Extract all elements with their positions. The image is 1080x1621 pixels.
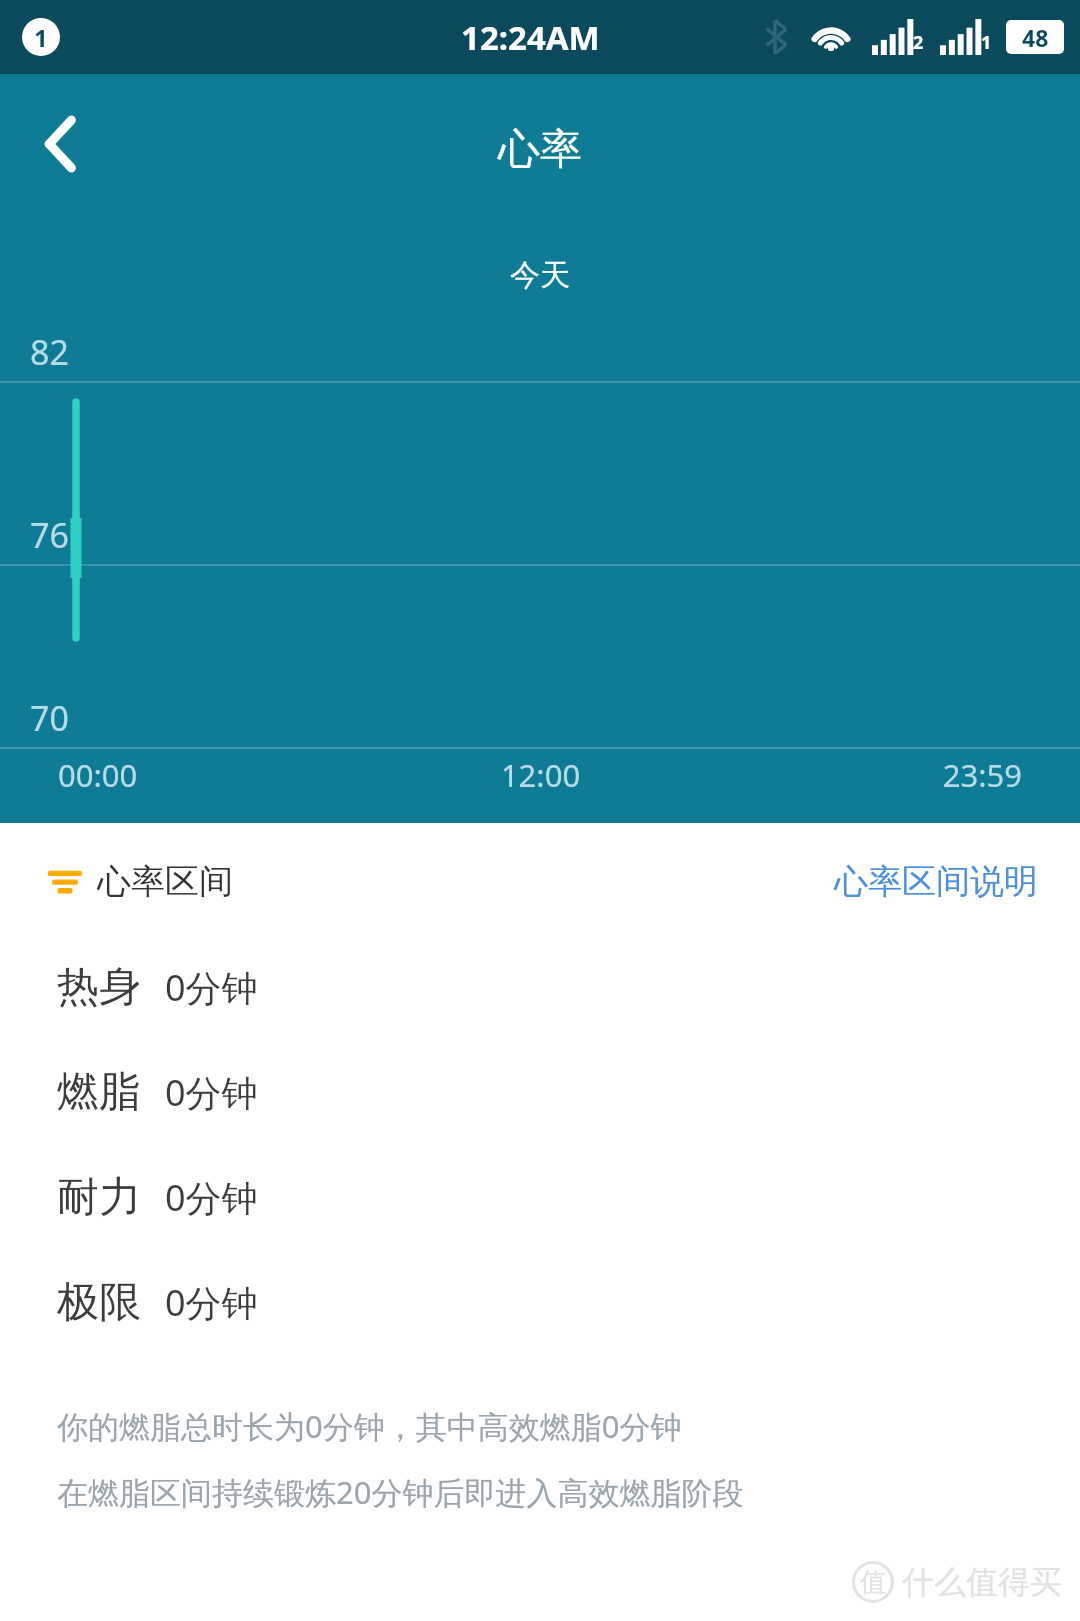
button[interactable]: 燃脂 bbox=[0, 1066, 1080, 1119]
staticText: 0分钟 bbox=[165, 1278, 258, 1327]
staticText: 热身 bbox=[57, 961, 141, 1014]
button[interactable]: 耐力 bbox=[0, 1171, 1080, 1224]
staticText: 1 bbox=[34, 21, 48, 54]
button[interactable]: 极限 bbox=[0, 1276, 1080, 1329]
button[interactable]: 热身 bbox=[0, 961, 1080, 1014]
staticText: 心率 bbox=[498, 123, 582, 176]
staticText: 心率区间说明 bbox=[834, 860, 1038, 903]
staticText: 什么值得买 bbox=[902, 1562, 1062, 1602]
staticText: 0分钟 bbox=[165, 1173, 258, 1222]
staticText: 你的燃脂总时长为0分钟，其中高效燃脂0分钟 bbox=[57, 1405, 682, 1447]
staticText: 00:00 bbox=[58, 754, 380, 796]
button[interactable]: 心率区间说明 bbox=[834, 860, 1038, 903]
staticText: 1 bbox=[981, 30, 992, 55]
staticText: 23:59 bbox=[701, 754, 1022, 796]
staticText: 耐力 bbox=[57, 1171, 141, 1224]
button[interactable]: 心率区间 bbox=[48, 860, 233, 903]
staticText: 12:00 bbox=[380, 754, 701, 796]
staticText: 心率区间 bbox=[97, 860, 233, 903]
staticText: 70 bbox=[30, 695, 69, 741]
staticText: 82 bbox=[30, 329, 69, 375]
staticText: 2 bbox=[913, 30, 924, 55]
staticText: 燃脂 bbox=[57, 1066, 141, 1119]
staticText: 48 bbox=[1022, 22, 1049, 53]
button[interactable]: 今天 bbox=[510, 256, 570, 294]
staticText: 0分钟 bbox=[165, 1068, 258, 1117]
staticText: 值 bbox=[860, 1566, 886, 1599]
button[interactable]: Back bbox=[18, 102, 102, 186]
staticText: 在燃脂区间持续锻炼20分钟后即进入高效燃脂阶段 bbox=[57, 1471, 744, 1513]
staticText: 76 bbox=[30, 512, 69, 558]
staticText: 极限 bbox=[57, 1276, 141, 1329]
staticText: 0分钟 bbox=[165, 963, 258, 1012]
staticText: 12:24AM bbox=[461, 15, 600, 60]
